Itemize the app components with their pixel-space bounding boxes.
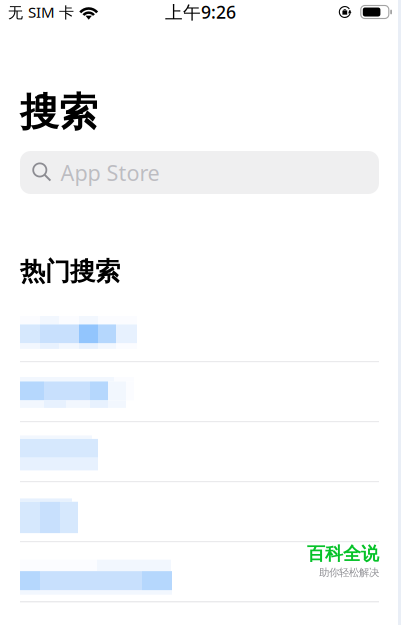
button[interactable] (20, 362, 379, 422)
button[interactable] (20, 302, 379, 362)
button[interactable] (20, 422, 379, 482)
staticText: 助你轻松解决 (319, 566, 379, 579)
staticText: 上午9:26 (165, 0, 236, 24)
staticText: 搜索 (20, 88, 98, 137)
staticText: 百科全说 (307, 542, 379, 565)
staticText: 热门搜索 (20, 256, 120, 288)
staticText: App Store (60, 158, 159, 187)
button[interactable]: 百科全说 (20, 542, 379, 602)
staticText: 无 SIM 卡 (8, 2, 74, 22)
button[interactable] (20, 482, 379, 542)
button[interactable]: App Store (20, 151, 379, 194)
